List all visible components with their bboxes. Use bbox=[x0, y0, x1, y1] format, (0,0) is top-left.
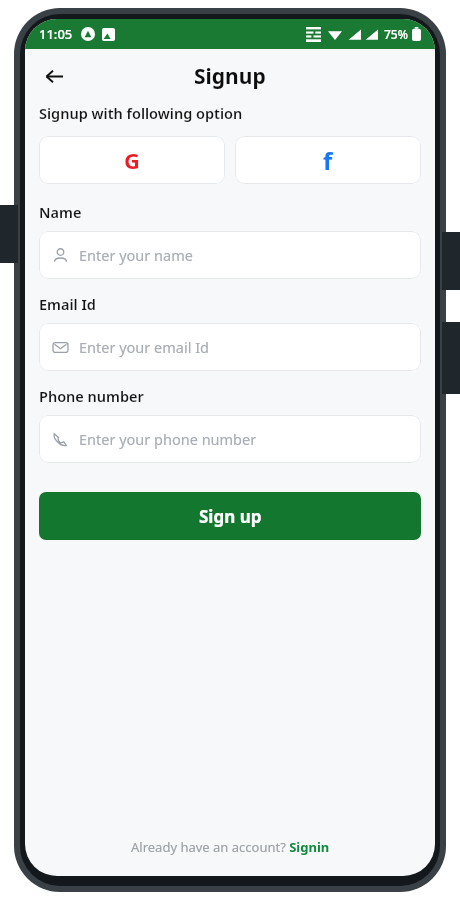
staticText: Name bbox=[39, 202, 82, 222]
staticText: Phone number bbox=[39, 386, 144, 406]
staticText: Signup bbox=[194, 62, 266, 91]
button[interactable]: Sign up with Google bbox=[39, 136, 225, 184]
button[interactable]: Enter your phone number bbox=[39, 415, 421, 463]
staticText: Signup with following option bbox=[39, 103, 243, 123]
staticText: 11:05 bbox=[39, 25, 73, 43]
button[interactable]: Already have an account? Signin bbox=[123, 834, 338, 860]
staticText: Already have an account? Signin bbox=[131, 838, 330, 856]
staticText: Sign up bbox=[199, 505, 262, 528]
staticText: Enter your email Id bbox=[79, 337, 210, 357]
staticText: Enter your name bbox=[79, 245, 193, 265]
staticText: Email Id bbox=[39, 294, 96, 314]
button[interactable]: Enter your email Id bbox=[39, 323, 421, 371]
staticText: Enter your phone number bbox=[79, 429, 257, 449]
button[interactable]: Back bbox=[33, 55, 75, 97]
staticText: 75% bbox=[384, 26, 408, 42]
button[interactable]: Enter your name bbox=[39, 231, 421, 279]
button[interactable]: Sign up bbox=[39, 492, 421, 540]
staticText: f bbox=[323, 144, 333, 177]
staticText: G bbox=[124, 145, 140, 175]
button[interactable]: Sign up with Facebook bbox=[235, 136, 421, 184]
